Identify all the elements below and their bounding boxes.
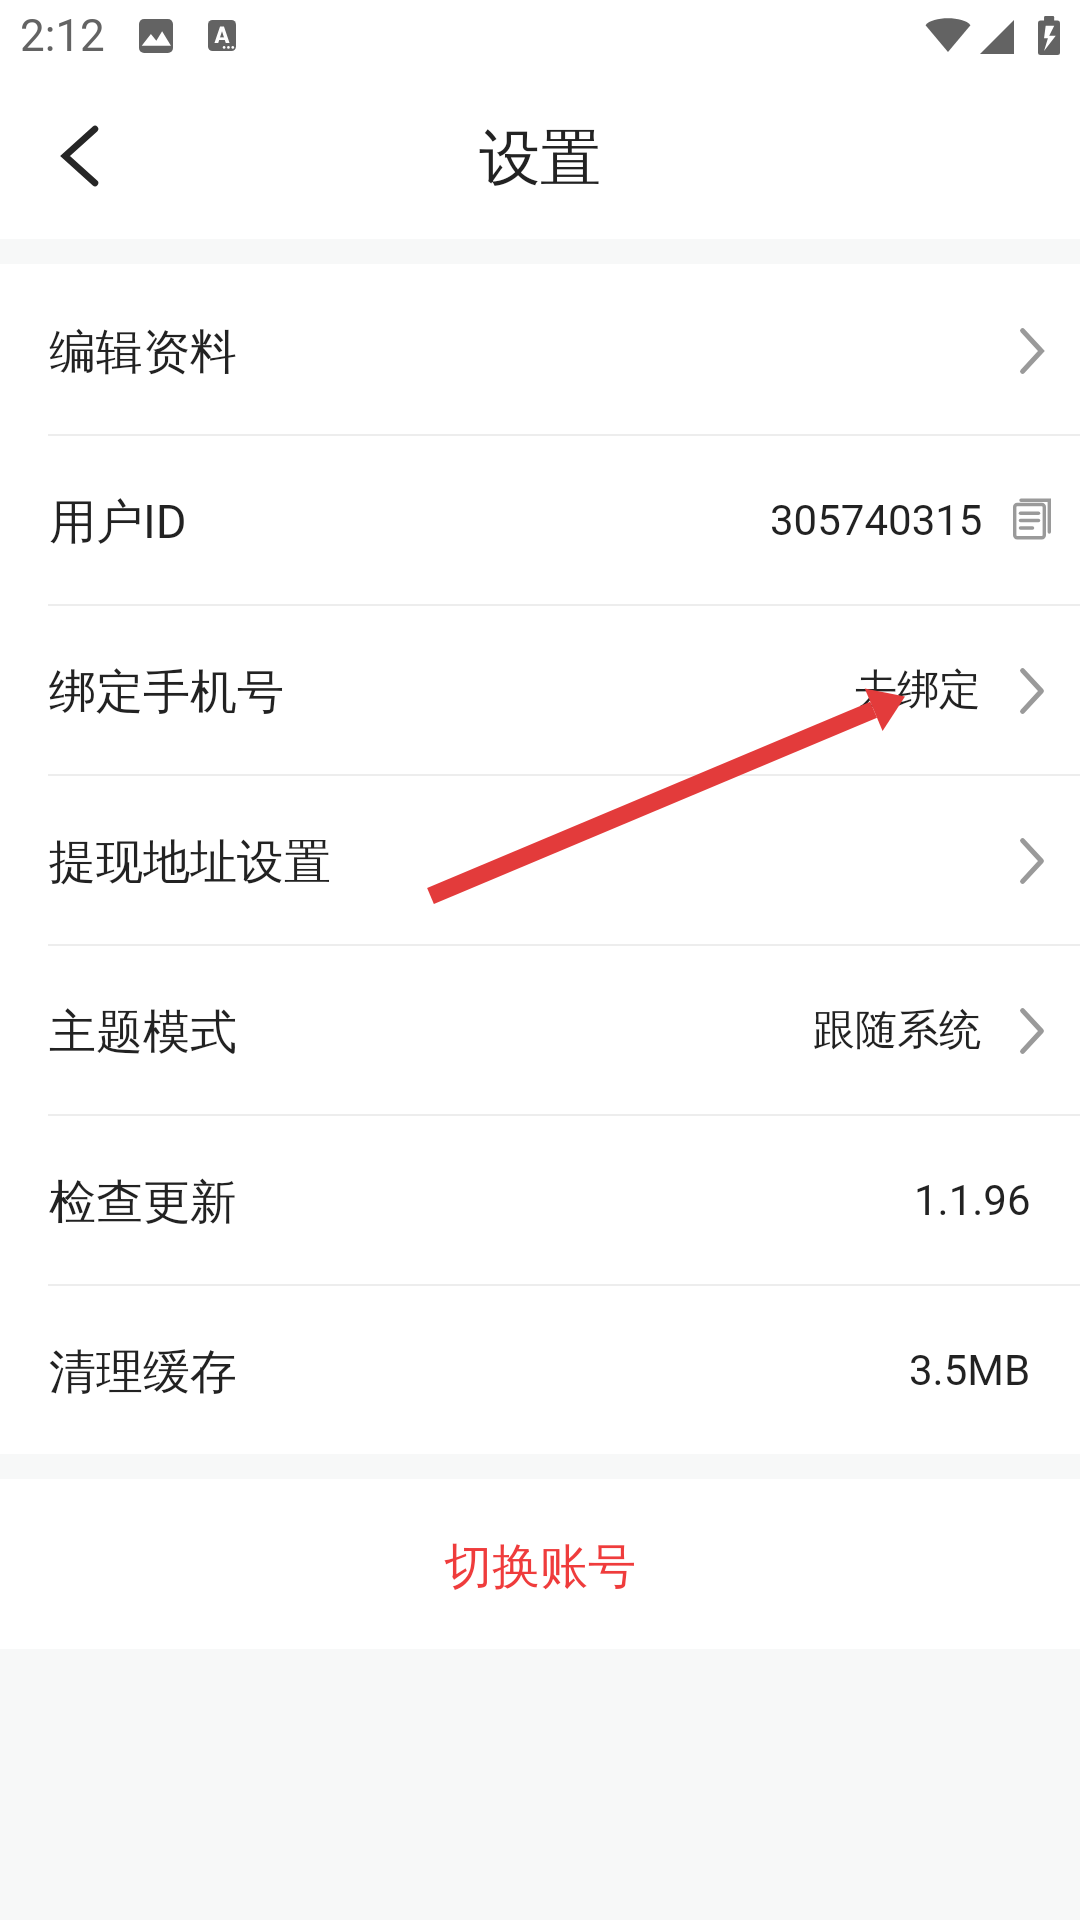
staticText: 去绑定 — [855, 664, 981, 717]
staticText: 清理缓存 — [49, 1343, 237, 1402]
staticText: 检查更新 — [49, 1173, 237, 1232]
staticText: 主题模式 — [49, 1003, 237, 1062]
button[interactable]: 主题模式 — [0, 944, 1080, 1114]
staticText: 绑定手机号 — [49, 663, 284, 722]
staticText: 编辑资料 — [49, 323, 237, 382]
button[interactable]: Back — [0, 76, 160, 236]
button[interactable]: 编辑资料 — [0, 264, 1080, 434]
staticText: 切换账号 — [444, 1537, 636, 1597]
staticText: 2:12 — [20, 10, 105, 62]
button[interactable]: 清理缓存 — [0, 1284, 1080, 1454]
button[interactable]: 提现地址设置 — [0, 774, 1080, 944]
staticText: 提现地址设置 — [49, 833, 331, 892]
button[interactable]: 绑定手机号 — [0, 604, 1080, 774]
staticText: 305740315 — [770, 496, 983, 545]
staticText: 1.1.96 — [914, 1176, 1031, 1225]
button[interactable]: 复制用户ID — [1013, 498, 1051, 540]
button[interactable]: 切换账号 — [0, 1479, 1080, 1649]
staticText: 设置 — [479, 120, 601, 197]
button[interactable]: 检查更新 — [0, 1114, 1080, 1284]
staticText: 用户ID — [49, 493, 187, 552]
staticText: 3.5MB — [909, 1346, 1031, 1395]
button[interactable]: 用户ID — [0, 434, 1080, 604]
staticText: 跟随系统 — [813, 1004, 981, 1057]
